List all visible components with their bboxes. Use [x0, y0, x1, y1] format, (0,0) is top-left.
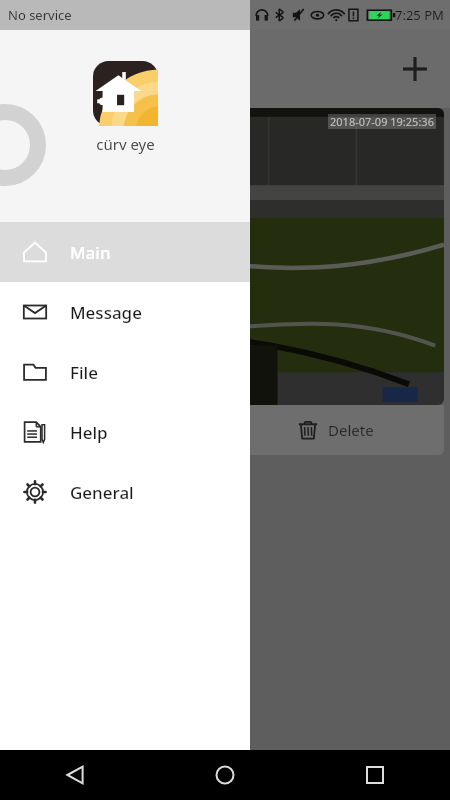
staticText: General: [70, 481, 134, 504]
button[interactable]: Main: [0, 222, 250, 282]
button[interactable]: Add device: [392, 46, 438, 92]
button[interactable]: Home: [150, 750, 300, 800]
staticText: No service: [8, 6, 72, 24]
button[interactable]: Playback: [6, 405, 225, 455]
button[interactable]: Delete: [225, 405, 444, 455]
staticText: Message: [70, 301, 142, 324]
staticText: 2018-07-09 19:25:36: [330, 114, 434, 129]
button[interactable]: Message: [0, 282, 250, 342]
staticText: 7:25 PM: [395, 6, 444, 24]
button[interactable]: File: [0, 342, 250, 402]
staticText: File: [70, 361, 98, 384]
button[interactable]: General: [0, 462, 250, 522]
button[interactable]: Back: [0, 750, 150, 800]
staticText: cürv eye: [96, 134, 155, 154]
staticText: Help: [70, 421, 108, 444]
button[interactable]: Recent apps: [300, 750, 450, 800]
staticText: Delete: [328, 420, 374, 440]
staticText: Playback: [102, 420, 164, 440]
staticText: Main: [70, 241, 111, 264]
button[interactable]: 2018-07-09 19:25:36: [6, 108, 444, 405]
button[interactable]: Help: [0, 402, 250, 462]
